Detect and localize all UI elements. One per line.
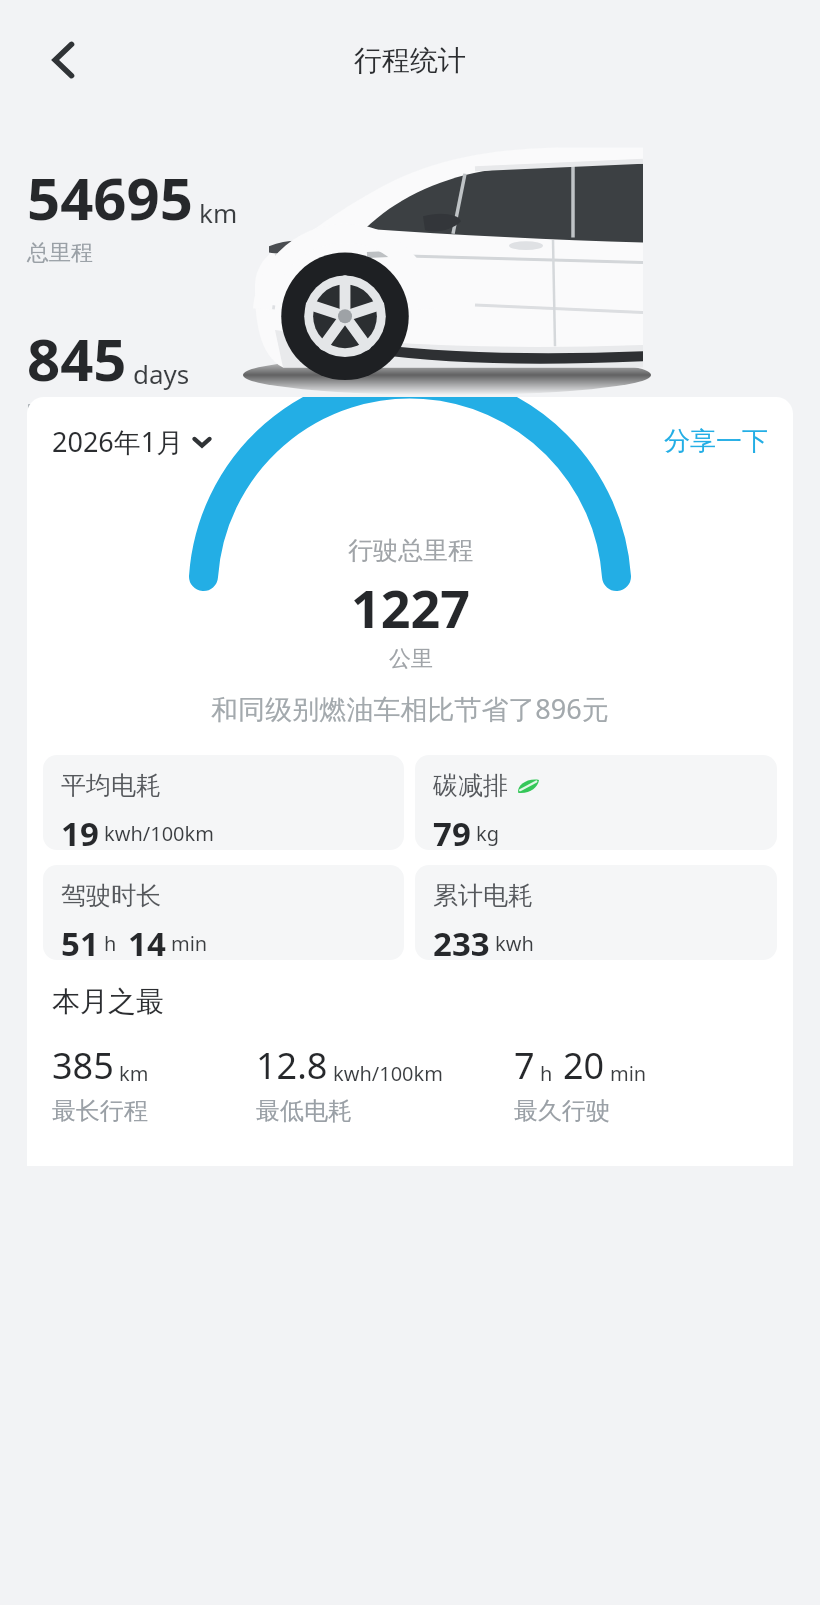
button[interactable]: 12.8 — [256, 1041, 514, 1126]
button[interactable]: 分享一下 — [664, 425, 768, 458]
staticText: 79 — [433, 811, 471, 850]
staticText: h — [104, 930, 117, 957]
staticText: 845 — [27, 319, 127, 398]
staticText: 19 — [61, 811, 99, 850]
staticText: min — [171, 930, 208, 957]
staticText: 14 — [128, 921, 166, 960]
staticText: km — [199, 195, 238, 230]
staticText: 行驶总里程 — [348, 535, 473, 566]
staticText: 最久行驶 — [514, 1096, 610, 1126]
staticText: 385 — [52, 1041, 114, 1090]
staticText: 20 — [563, 1041, 605, 1090]
button[interactable]: 驾驶时长 — [43, 865, 404, 960]
staticText: 驾驶时长 — [61, 880, 161, 911]
button[interactable]: 累计电耗 — [415, 865, 777, 960]
staticText: kwh/100km — [104, 820, 214, 847]
staticText: 1227 — [351, 572, 470, 643]
button[interactable]: Back — [26, 26, 94, 94]
staticText: 最低电耗 — [256, 1096, 352, 1126]
staticText: 本月之最 — [52, 984, 164, 1019]
staticText: h — [540, 1060, 553, 1087]
button[interactable]: 385 — [52, 1041, 256, 1126]
button[interactable]: 7 — [514, 1041, 793, 1126]
staticText: days — [133, 356, 190, 391]
staticText: 12.8 — [256, 1041, 328, 1090]
staticText: 51 — [61, 921, 99, 960]
button[interactable]: 2026年1月 — [52, 423, 212, 460]
button[interactable]: 碳减排 — [415, 755, 777, 850]
button[interactable]: 平均电耗 — [43, 755, 404, 850]
staticText: km — [119, 1060, 149, 1087]
staticText: 总里程 — [27, 239, 93, 267]
staticText: 公里 — [389, 645, 433, 673]
staticText: 行程统计 — [354, 43, 466, 78]
staticText: 2026年1月 — [52, 423, 184, 460]
staticText: 平均电耗 — [61, 770, 161, 801]
staticText: 累计电耗 — [433, 880, 533, 911]
staticText: 碳减排 — [433, 770, 508, 801]
staticText: kwh/100km — [333, 1060, 443, 1087]
staticText: 陪伴天数 — [27, 400, 115, 428]
staticText: kg — [476, 820, 499, 847]
staticText: 233 — [433, 921, 490, 960]
staticText: 最长行程 — [52, 1096, 148, 1126]
staticText: min — [610, 1060, 647, 1087]
staticText: 54695 — [27, 158, 193, 237]
staticText: kwh — [495, 930, 534, 957]
staticText: 和同级别燃油车相比节省了896元 — [27, 690, 793, 727]
staticText: 7 — [514, 1041, 535, 1090]
